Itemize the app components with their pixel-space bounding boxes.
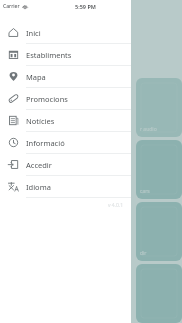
staticText: Informació <box>26 138 65 148</box>
staticText: 5:59 PM <box>75 3 96 10</box>
staticText: Carrier <box>3 3 20 10</box>
button[interactable]: Idioma <box>0 176 131 198</box>
button[interactable]: Card <box>136 78 182 137</box>
button[interactable]: Inici <box>0 22 131 44</box>
staticText: Promocions <box>26 94 68 104</box>
staticText: Notícies <box>26 116 55 126</box>
button[interactable]: Promocions <box>0 88 131 110</box>
staticText: dir <box>140 250 147 257</box>
staticText: r audio <box>140 126 157 133</box>
button[interactable]: Establiments <box>0 44 131 66</box>
button[interactable]: Informació <box>0 132 131 154</box>
staticText: Idioma <box>26 182 51 192</box>
button[interactable]: Card <box>136 264 182 323</box>
staticText: cars <box>140 188 150 195</box>
button[interactable]: Notícies <box>0 110 131 132</box>
button[interactable]: Card <box>136 202 182 261</box>
staticText: Establiments <box>26 50 72 60</box>
staticText: v 4.0.1 <box>0 202 123 209</box>
staticText: Mapa <box>26 72 46 82</box>
staticText: Accedir <box>26 160 52 170</box>
button[interactable]: Card <box>136 140 182 199</box>
button[interactable]: Accedir <box>0 154 131 176</box>
button[interactable]: Mapa <box>0 66 131 88</box>
staticText: Inici <box>26 28 41 38</box>
